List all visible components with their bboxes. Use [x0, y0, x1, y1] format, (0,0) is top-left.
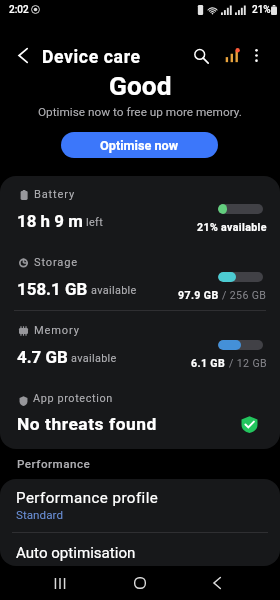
staticText: No threats found [17, 414, 157, 434]
staticText: Optimise now to free up more memory. [38, 105, 242, 119]
staticText: left [86, 216, 104, 229]
staticText: Optimise now [100, 138, 179, 153]
button[interactable]: Performance profile [0, 479, 280, 532]
button[interactable]: Back [197, 568, 237, 598]
staticText: / 256 GB [219, 289, 267, 301]
staticText: 21% available [197, 221, 267, 233]
staticText: Auto optimisation [16, 544, 136, 562]
staticText: Standard [16, 508, 63, 522]
staticText: Memory [34, 324, 80, 337]
staticText: 18 h 9 m [17, 211, 83, 231]
staticText: Battery [34, 188, 76, 201]
button[interactable]: Recent apps [40, 568, 80, 598]
staticText: 158.1 GB [17, 279, 88, 299]
button[interactable]: Memory [0, 312, 280, 380]
button[interactable]: More options [244, 43, 269, 68]
button[interactable]: Home [120, 568, 160, 598]
staticText: 21% [252, 4, 271, 16]
staticText: Performance [17, 457, 91, 471]
staticText: 97.9 GB [178, 289, 219, 301]
button[interactable]: Storage [0, 244, 280, 312]
button[interactable]: App protection [0, 380, 280, 448]
staticText: Good [109, 71, 172, 102]
staticText: App protection [33, 392, 113, 405]
staticText: Performance profile [16, 489, 159, 507]
staticText: Device care [42, 47, 141, 68]
staticText: available [71, 352, 117, 365]
staticText: 2:02 [9, 4, 29, 16]
button[interactable]: Optimise now [61, 132, 218, 158]
staticText: 4.7 GB [17, 347, 68, 367]
staticText: / 12 GB [226, 357, 267, 369]
staticText: 6.1 GB [191, 357, 226, 369]
staticText: Storage [34, 256, 78, 269]
button[interactable]: Battery [0, 176, 280, 244]
button[interactable]: Search [188, 43, 213, 68]
staticText: available [91, 284, 137, 297]
button[interactable]: Navigate up [10, 43, 35, 68]
button[interactable]: Usage statistics [219, 43, 244, 68]
button[interactable]: Auto optimisation [0, 533, 280, 566]
